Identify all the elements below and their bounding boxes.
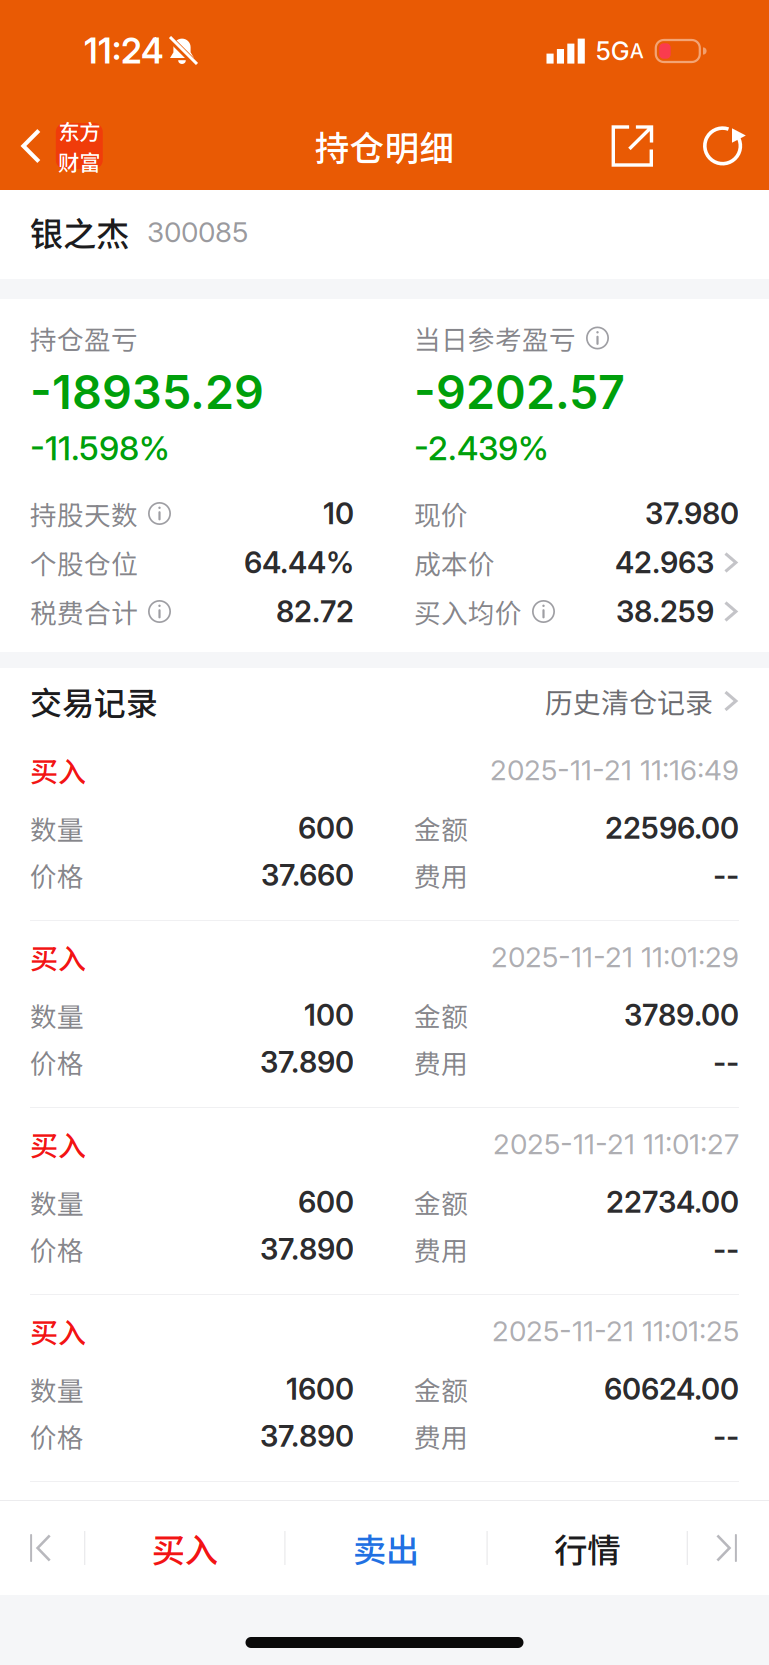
staticText: 2025-11-21 11:01:27 <box>493 1127 739 1161</box>
staticText: 财富 <box>58 146 100 177</box>
staticText: 金额 <box>414 996 468 1034</box>
staticText: 600 <box>298 810 354 846</box>
staticText: 11:24 <box>84 30 164 72</box>
staticText: 数量 <box>30 996 84 1034</box>
staticText: 100 <box>304 997 354 1033</box>
staticText: 82.72 <box>276 594 354 629</box>
staticText: -9202.57 <box>414 364 625 420</box>
staticText: -- <box>713 1044 739 1080</box>
staticText: 银之杰 <box>30 208 129 256</box>
staticText: 2025-11-21 11:01:29 <box>491 940 739 974</box>
staticText: -11.598% <box>30 428 170 468</box>
staticText: 22734.00 <box>606 1184 739 1220</box>
staticText: 42.963 <box>615 545 714 580</box>
staticText: 持仓明细 <box>314 121 454 171</box>
staticText: 东方 <box>58 115 100 146</box>
staticText: 3789.00 <box>624 997 739 1033</box>
staticText: 费用 <box>414 1043 468 1081</box>
staticText: -18935.29 <box>30 364 264 420</box>
staticText: 数量 <box>30 809 84 847</box>
staticText: 600 <box>298 1184 354 1220</box>
staticText: 37.660 <box>261 857 354 893</box>
staticText: 37.890 <box>260 1231 354 1267</box>
button[interactable]: 刷新 <box>695 111 746 180</box>
staticText: 当日参考盈亏 <box>414 319 576 357</box>
staticText: 数量 <box>30 1183 84 1221</box>
staticText: 费用 <box>414 1417 468 1455</box>
button[interactable]: 买入 <box>85 1501 284 1595</box>
button[interactable]: 行情 <box>488 1501 687 1595</box>
staticText: 个股仓位 <box>30 543 138 582</box>
staticText: 买入 <box>30 1311 86 1351</box>
staticText: 行情 <box>554 1524 620 1572</box>
staticText: -- <box>713 857 739 893</box>
staticText: 价格 <box>30 1417 84 1455</box>
button[interactable]: 上一只 <box>3 1501 84 1595</box>
staticText: 持股天数 <box>30 494 138 533</box>
staticText: 37.980 <box>645 496 739 531</box>
staticText: 2025-11-21 11:16:49 <box>490 753 739 787</box>
staticText: 10 <box>323 496 354 531</box>
staticText: 金额 <box>414 1183 468 1221</box>
button[interactable]: 下一只 <box>688 1501 766 1595</box>
staticText: 成本价 <box>414 543 495 582</box>
staticText: 税费合计 <box>30 592 138 631</box>
staticText: A <box>630 39 644 63</box>
staticText: 买入 <box>152 1524 218 1572</box>
button[interactable]: 卖出 <box>285 1501 486 1595</box>
staticText: 价格 <box>30 1043 84 1081</box>
button[interactable]: 返回 <box>0 111 115 181</box>
staticText: -- <box>713 1231 739 1267</box>
staticText: 金额 <box>414 809 468 847</box>
staticText: 数量 <box>30 1370 84 1408</box>
staticText: 历史清仓记录 <box>545 681 713 721</box>
staticText: 1600 <box>286 1371 354 1407</box>
button[interactable]: 历史清仓记录 <box>545 681 739 721</box>
staticText: 60624.00 <box>604 1371 739 1407</box>
staticText: 金额 <box>414 1370 468 1408</box>
staticText: 2025-11-21 11:01:25 <box>492 1314 739 1348</box>
staticText: 买入 <box>30 750 86 790</box>
staticText: 交易记录 <box>30 678 158 724</box>
staticText: 5G <box>596 36 630 66</box>
staticText: 64.44% <box>244 545 354 580</box>
staticText: 费用 <box>414 856 468 894</box>
staticText: 卖出 <box>353 1524 419 1572</box>
staticText: 买入均价 <box>414 592 522 631</box>
staticText: 费用 <box>414 1230 468 1268</box>
staticText: 37.890 <box>260 1044 354 1080</box>
staticText: 现价 <box>414 494 468 533</box>
staticText: 价格 <box>30 1230 84 1268</box>
staticText: 37.890 <box>260 1418 354 1454</box>
staticText: 38.259 <box>616 594 714 629</box>
staticText: -2.439% <box>414 428 549 468</box>
staticText: 买入 <box>30 1124 86 1164</box>
staticText: -- <box>713 1418 739 1454</box>
staticText: 22596.00 <box>605 810 739 846</box>
staticText: 持仓盈亏 <box>30 319 138 357</box>
staticText: 买入 <box>30 937 86 977</box>
staticText: 价格 <box>30 856 84 894</box>
button[interactable]: 分享 <box>598 111 695 181</box>
staticText: 300085 <box>147 215 248 249</box>
